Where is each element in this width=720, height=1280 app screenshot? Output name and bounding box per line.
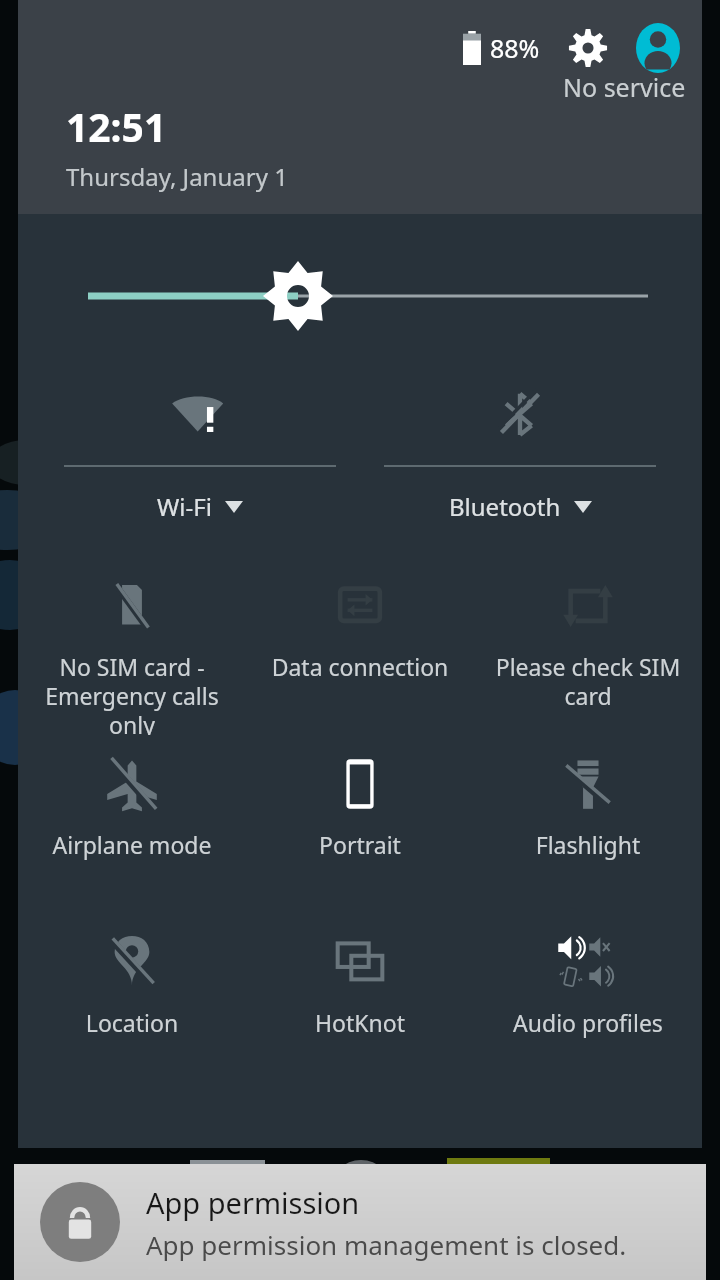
staticText: Bluetooth xyxy=(449,490,561,523)
button[interactable]: Brightness xyxy=(18,266,702,326)
button[interactable]: Portrait xyxy=(246,745,474,913)
button[interactable]: Bluetooth xyxy=(384,378,656,523)
staticText: Location xyxy=(24,1007,240,1038)
staticText: 12:51 xyxy=(66,100,167,153)
staticText: Data connection xyxy=(252,651,468,682)
button[interactable]: App permission xyxy=(14,1164,706,1280)
staticText: Please check SIM card xyxy=(480,651,696,712)
button[interactable]: Airplane mode xyxy=(18,745,246,913)
staticText: Wi-Fi xyxy=(157,490,212,523)
staticText: No service xyxy=(563,70,686,104)
button[interactable]: HotKnot xyxy=(246,923,474,1091)
button[interactable]: Location xyxy=(18,923,246,1091)
staticText: Portrait xyxy=(252,829,468,860)
staticText: 88% xyxy=(490,31,540,65)
staticText: App permission management is closed. xyxy=(146,1227,627,1262)
staticText: HotKnot xyxy=(252,1007,468,1038)
button[interactable]: No SIM card - Emergency calls only xyxy=(18,567,246,735)
staticText: App permission xyxy=(146,1183,360,1222)
button[interactable]: Settings xyxy=(566,26,610,70)
staticText: Airplane mode xyxy=(24,829,240,860)
button[interactable]: Flashlight xyxy=(474,745,702,913)
staticText: Thursday, January 1 xyxy=(66,160,288,193)
staticText: No SIM card - Emergency calls only xyxy=(24,651,240,735)
button[interactable]: User xyxy=(632,22,684,74)
staticText: Audio profiles xyxy=(480,1007,696,1038)
button[interactable]: Please check SIM card xyxy=(474,567,702,735)
button[interactable]: Audio profiles xyxy=(474,923,702,1091)
button[interactable]: Wi-Fi xyxy=(64,378,336,523)
button[interactable]: Data connection xyxy=(246,567,474,735)
staticText: Flashlight xyxy=(480,829,696,860)
